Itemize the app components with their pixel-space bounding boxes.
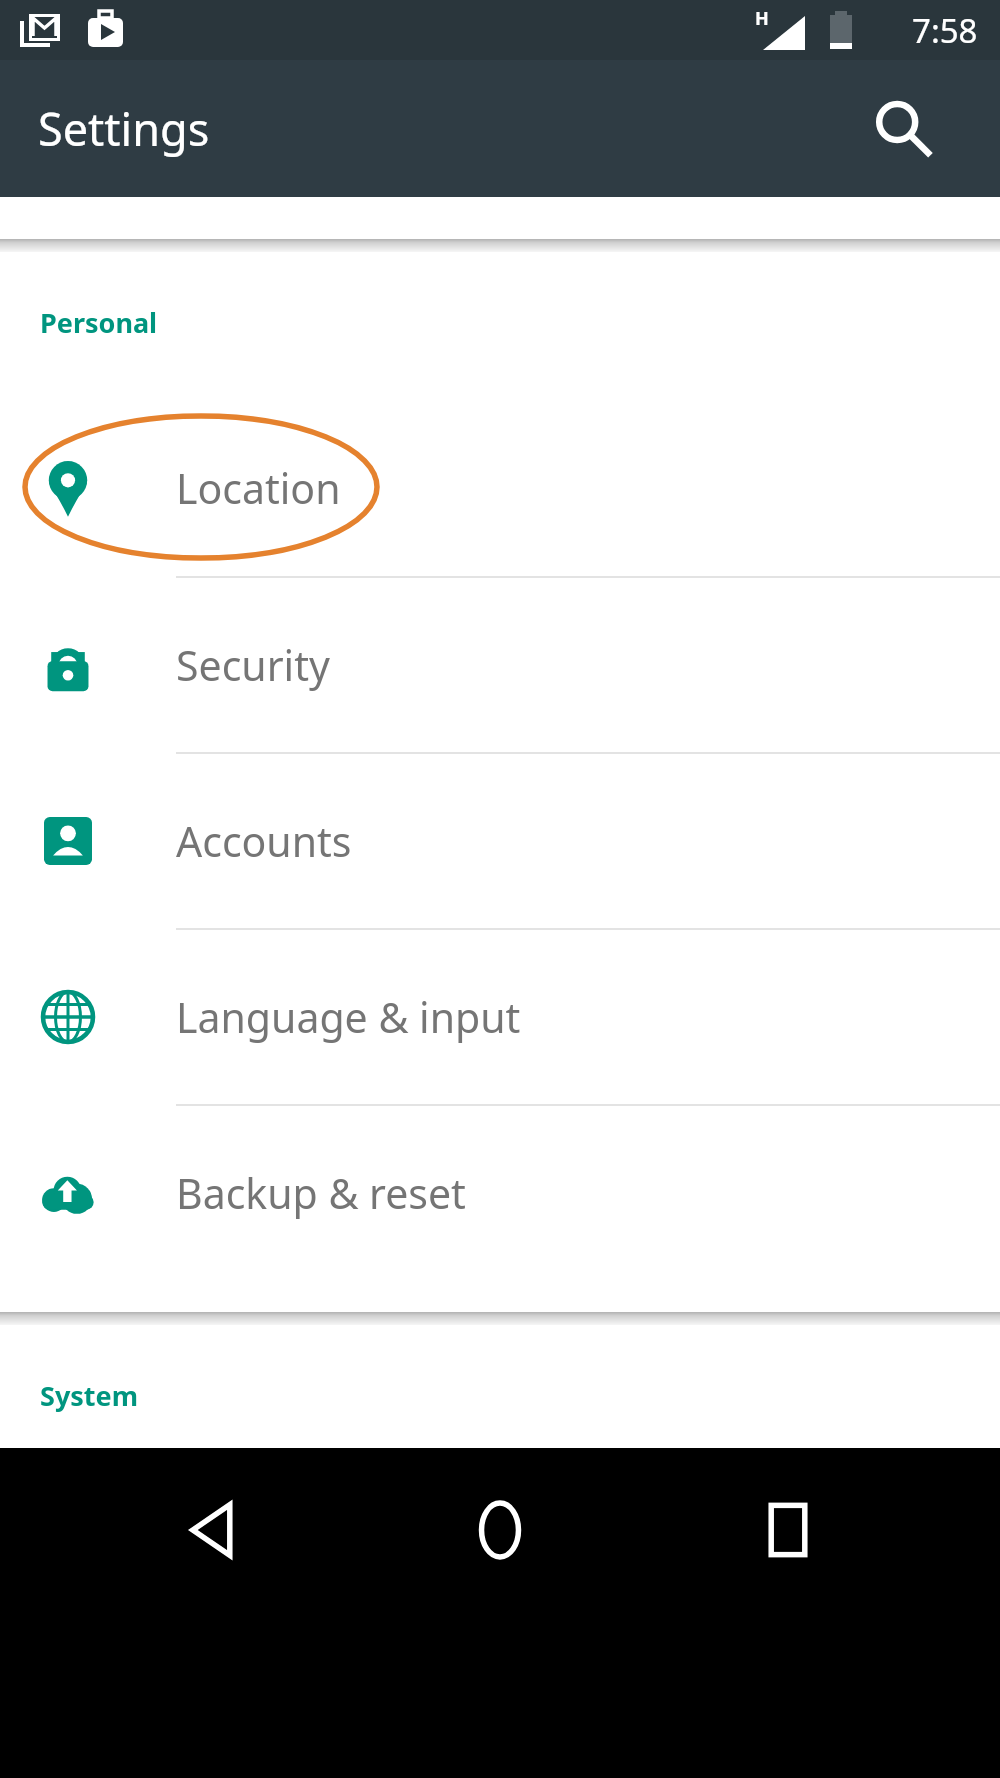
button[interactable]: Location [0,400,1000,576]
staticText: Personal [40,304,158,341]
button[interactable]: Home [425,1455,575,1605]
staticText: Settings [38,98,210,159]
staticText: Security [176,637,330,693]
staticText: Language & input [176,989,521,1045]
button[interactable]: Accounts [0,754,1000,928]
staticText: H [755,6,769,31]
button[interactable]: Back [138,1455,288,1605]
staticText: Location [176,460,341,516]
button[interactable]: Search [848,74,958,184]
button[interactable]: Recent apps [713,1455,863,1605]
staticText: System [40,1377,139,1414]
staticText: Backup & reset [176,1165,466,1221]
button[interactable]: Security [0,578,1000,752]
button[interactable]: Language & input [0,930,1000,1104]
staticText: 7:58 [912,8,978,53]
button[interactable]: Backup & reset [0,1106,1000,1280]
staticText: Accounts [176,813,352,869]
